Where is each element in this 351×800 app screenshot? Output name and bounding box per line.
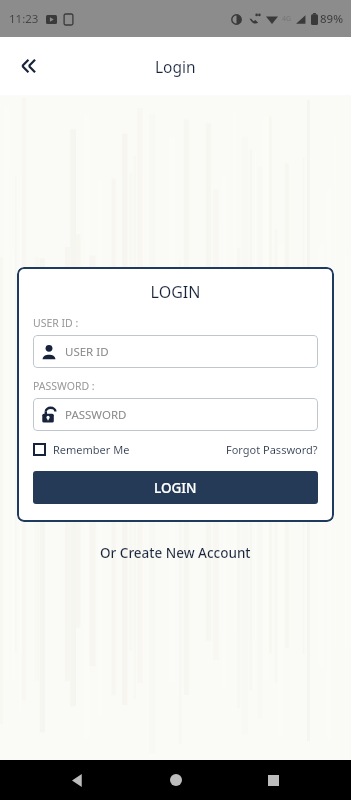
staticText: 11:23	[9, 11, 39, 27]
button[interactable]: USER ID	[33, 335, 318, 368]
button[interactable]: PASSWORD	[33, 398, 318, 431]
staticText: LOGIN	[33, 281, 318, 303]
staticText: Login	[155, 56, 196, 77]
button[interactable]: Back	[6, 44, 50, 88]
button[interactable]: Or Create New Account	[100, 544, 251, 562]
button[interactable]: Back	[58, 760, 98, 800]
staticText: USER ID :	[33, 316, 79, 330]
staticText: PASSWORD :	[33, 379, 95, 393]
staticText: LOGIN	[154, 479, 197, 497]
button[interactable]: LOGIN	[33, 471, 318, 504]
staticText: Remember Me	[53, 442, 130, 457]
button[interactable]: Home	[156, 760, 196, 800]
button[interactable]: Recents	[253, 760, 293, 800]
staticText: 89%	[320, 11, 343, 27]
button[interactable]: Remember Me	[33, 442, 130, 457]
button[interactable]: Forgot Password?	[226, 442, 318, 457]
staticText: 4G	[282, 14, 292, 24]
staticText: USER ID	[65, 344, 109, 360]
staticText: PASSWORD	[65, 407, 127, 423]
